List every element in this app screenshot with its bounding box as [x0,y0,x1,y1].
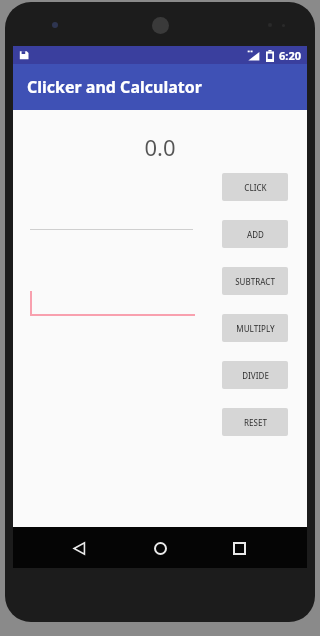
button[interactable]: ADD [222,220,288,248]
button[interactable] [30,280,195,316]
button[interactable]: Recent apps [226,535,252,561]
staticText: 6:20 [279,48,301,63]
staticText: RESET [244,417,267,428]
staticText: Clicker and Calculator [27,76,202,98]
staticText: SUBTRACT [235,276,275,287]
button[interactable]: MULTIPLY [222,314,288,342]
button[interactable]: SUBTRACT [222,267,288,295]
staticText: 0.0 [144,132,176,162]
button[interactable] [30,196,193,230]
staticText: CLICK [244,182,267,193]
button[interactable]: Home [147,535,173,561]
button[interactable]: RESET [222,408,288,436]
staticText: DIVIDE [242,370,269,381]
staticText: ADD [247,229,264,240]
button[interactable]: DIVIDE [222,361,288,389]
button[interactable]: Back [66,535,92,561]
staticText: MULTIPLY [236,323,275,334]
button[interactable]: CLICK [222,173,288,201]
